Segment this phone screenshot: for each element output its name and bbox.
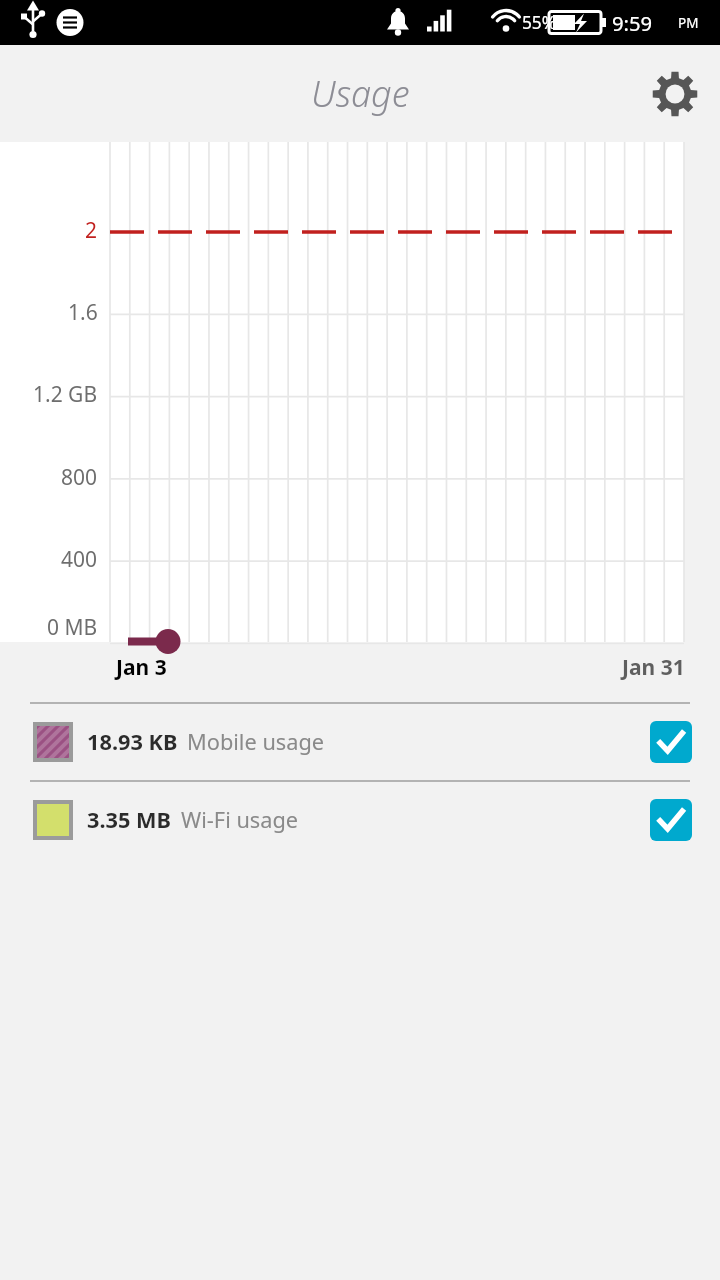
button[interactable]: Wi-Fi usage enabled <box>650 799 692 841</box>
staticText: Jan 31 <box>622 653 685 682</box>
staticText: 1.2 GB <box>33 380 98 409</box>
staticText: 800 <box>61 463 98 492</box>
staticText: Mobile usage <box>187 727 325 757</box>
staticText: 0 MB <box>47 613 98 642</box>
staticText: 1.6 <box>68 298 98 327</box>
button[interactable]: 18.93 KB <box>0 704 720 780</box>
staticText: 9:59 <box>612 9 653 37</box>
staticText: 18.93 KB <box>87 727 178 757</box>
staticText: 3.35 MB <box>87 805 172 835</box>
button[interactable]: Settings <box>644 63 706 125</box>
staticText: PM <box>678 14 699 32</box>
button[interactable]: 3.35 MB <box>0 782 720 858</box>
button[interactable]: Mobile usage enabled <box>650 721 692 763</box>
staticText: Jan 3 <box>116 653 167 682</box>
staticText: 55% <box>522 11 557 34</box>
staticText: Usage <box>311 69 410 118</box>
staticText: 400 <box>61 545 98 574</box>
staticText: Wi-Fi usage <box>181 805 299 835</box>
staticText: 2 <box>85 216 98 245</box>
